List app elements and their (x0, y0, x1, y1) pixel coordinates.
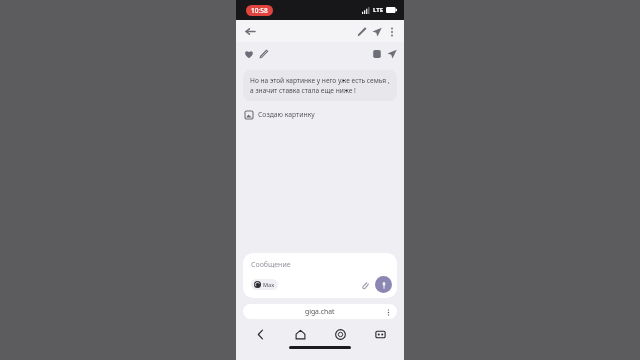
staticText: Создаю картинку (258, 110, 315, 119)
staticText: Сообщение (251, 260, 291, 270)
button[interactable]: Back (242, 23, 258, 39)
button[interactable]: Forward (384, 46, 399, 61)
staticText: 10:58 (251, 6, 268, 15)
button[interactable]: Share (369, 24, 384, 39)
button[interactable]: Но на этой картинке у него уже есть семь… (243, 70, 397, 101)
button[interactable]: Mark (256, 46, 271, 61)
staticText: LTE (373, 6, 384, 14)
button[interactable]: Profile (330, 324, 350, 344)
button[interactable]: Page menu (383, 307, 393, 317)
staticText: giga.chat (305, 307, 335, 316)
staticText: Но на этой картинке у него уже есть семь… (250, 76, 390, 95)
staticText: Max (263, 281, 275, 288)
button[interactable]: Like (241, 46, 256, 61)
button[interactable]: Voice input (375, 276, 392, 293)
button[interactable]: Copy (369, 46, 384, 61)
button[interactable]: giga.chat (243, 304, 397, 319)
button[interactable]: Home (290, 324, 310, 344)
button[interactable]: Back (250, 324, 270, 344)
button[interactable]: Tabs (370, 324, 390, 344)
button[interactable]: Edit (354, 24, 369, 39)
button[interactable]: Attach file (358, 278, 372, 292)
button[interactable]: More options (384, 24, 399, 39)
button[interactable]: Создаю картинку (245, 110, 404, 119)
button[interactable]: Max (251, 279, 278, 290)
